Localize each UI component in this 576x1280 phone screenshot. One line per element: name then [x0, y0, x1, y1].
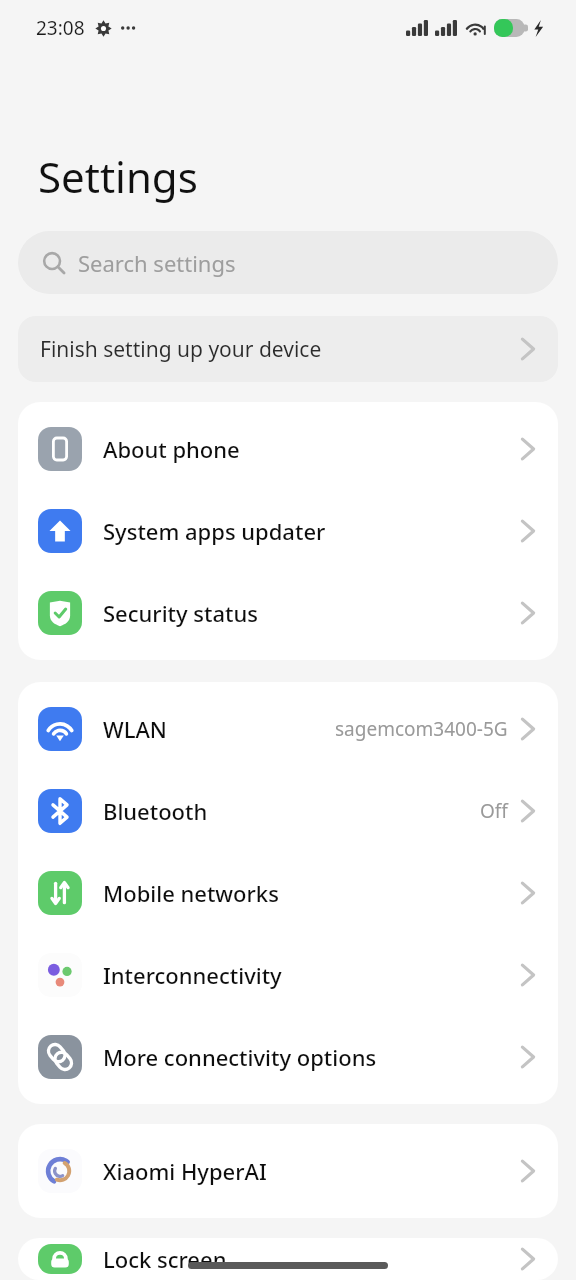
button[interactable]: WLAN — [18, 688, 558, 770]
staticText: Off — [480, 798, 508, 824]
staticText: WLAN — [103, 714, 335, 744]
button[interactable]: Search settings — [18, 231, 558, 294]
staticText: Search settings — [78, 248, 236, 278]
button[interactable]: About phone — [18, 408, 558, 490]
staticText: sagemcom3400-5G — [335, 716, 508, 742]
staticText: Lock screen — [103, 1244, 520, 1274]
staticText: Finish setting up your device — [40, 335, 322, 364]
button[interactable]: System apps updater — [18, 490, 558, 572]
staticText: System apps updater — [103, 516, 520, 546]
button[interactable]: Finish setting up your device — [18, 316, 558, 382]
staticText: 23:08 — [36, 15, 85, 41]
button[interactable]: Xiaomi HyperAI — [18, 1130, 558, 1212]
staticText: Xiaomi HyperAI — [103, 1156, 520, 1186]
staticText: Settings — [38, 148, 198, 205]
staticText: Mobile networks — [103, 878, 520, 908]
staticText: Interconnectivity — [103, 960, 520, 990]
button[interactable]: More connectivity options — [18, 1016, 558, 1098]
staticText: Security status — [103, 598, 520, 628]
staticText: About phone — [103, 434, 520, 464]
button[interactable]: Mobile networks — [18, 852, 558, 934]
button[interactable]: Security status — [18, 572, 558, 654]
staticText: Bluetooth — [103, 796, 480, 826]
button[interactable]: Bluetooth — [18, 770, 558, 852]
button[interactable]: Lock screen — [18, 1244, 558, 1274]
staticText: More connectivity options — [103, 1042, 520, 1072]
button[interactable]: Interconnectivity — [18, 934, 558, 1016]
